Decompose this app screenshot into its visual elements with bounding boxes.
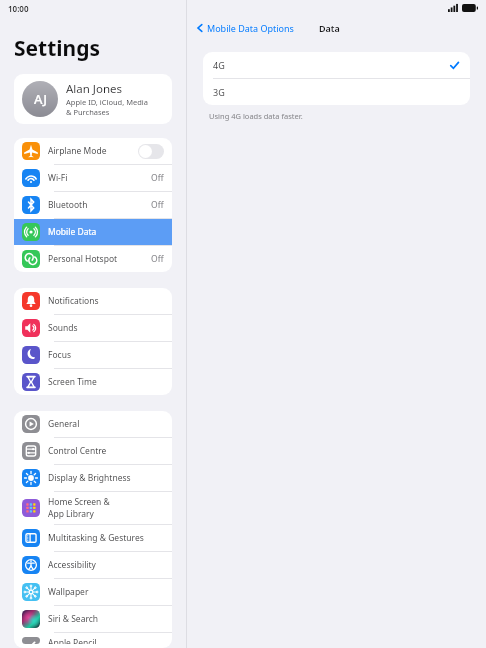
- button[interactable]: Mobile Data: [14, 219, 172, 245]
- staticText: Mobile Data: [48, 226, 97, 238]
- staticText: Multitasking & Gestures: [48, 532, 144, 544]
- staticText: General: [48, 418, 80, 430]
- staticText: Apple Pencil: [48, 637, 97, 644]
- button[interactable]: Airplane Mode: [14, 138, 172, 164]
- button[interactable]: Display & Brightness: [14, 465, 172, 491]
- staticText: Wallpaper: [48, 586, 89, 598]
- staticText: AJ: [34, 90, 47, 108]
- staticText: Control Centre: [48, 445, 107, 457]
- staticText: & Purchases: [66, 107, 110, 117]
- staticText: Notifications: [48, 295, 99, 307]
- staticText: 4G: [213, 59, 449, 71]
- staticText: Airplane Mode: [48, 145, 107, 157]
- staticText: Apple ID, iCloud, Media: [66, 97, 148, 107]
- staticText: Settings: [14, 34, 101, 63]
- staticText: Accessibility: [48, 559, 96, 571]
- staticText: Bluetooth: [48, 199, 88, 211]
- staticText: Off: [151, 253, 164, 265]
- staticText: Personal Hotspot: [48, 253, 118, 265]
- button[interactable]: Control Centre: [14, 438, 172, 464]
- staticText: Using 4G loads data faster.: [209, 111, 303, 121]
- button[interactable]: Accessibility: [14, 552, 172, 578]
- button[interactable]: Apple Pencil: [14, 633, 172, 648]
- staticText: Siri & Search: [48, 613, 99, 625]
- staticText: Sounds: [48, 322, 78, 334]
- button[interactable]: Mobile Data Options: [195, 22, 294, 34]
- button[interactable]: Wi-Fi: [14, 165, 172, 191]
- staticText: Display & Brightness: [48, 472, 131, 484]
- button[interactable]: Home Screen &: [14, 492, 172, 524]
- button[interactable]: Screen Time: [14, 369, 172, 395]
- button[interactable]: 3G: [203, 79, 470, 105]
- staticText: Alan Jones: [66, 81, 123, 97]
- button[interactable]: Airplane Mode toggle: [138, 144, 164, 159]
- staticText: Focus: [48, 349, 71, 361]
- button[interactable]: 4G: [203, 52, 470, 78]
- staticText: Wi-Fi: [48, 172, 68, 184]
- button[interactable]: Notifications: [14, 288, 172, 314]
- staticText: Data: [319, 22, 340, 34]
- button[interactable]: Bluetooth: [14, 192, 172, 218]
- staticText: Mobile Data Options: [207, 22, 294, 34]
- button[interactable]: Siri & Search: [14, 606, 172, 632]
- button[interactable]: General: [14, 411, 172, 437]
- button[interactable]: Wallpaper: [14, 579, 172, 605]
- button[interactable]: AJ: [14, 74, 172, 124]
- staticText: Off: [151, 199, 164, 211]
- button[interactable]: Focus: [14, 342, 172, 368]
- staticText: Off: [151, 172, 164, 184]
- staticText: App Library: [48, 508, 94, 520]
- button[interactable]: Personal Hotspot: [14, 246, 172, 272]
- staticText: Screen Time: [48, 376, 97, 388]
- button[interactable]: Multitasking & Gestures: [14, 525, 172, 551]
- button[interactable]: Sounds: [14, 315, 172, 341]
- staticText: 3G: [213, 86, 460, 98]
- staticText: Home Screen &: [48, 496, 110, 508]
- staticText: 10:00: [8, 3, 29, 14]
